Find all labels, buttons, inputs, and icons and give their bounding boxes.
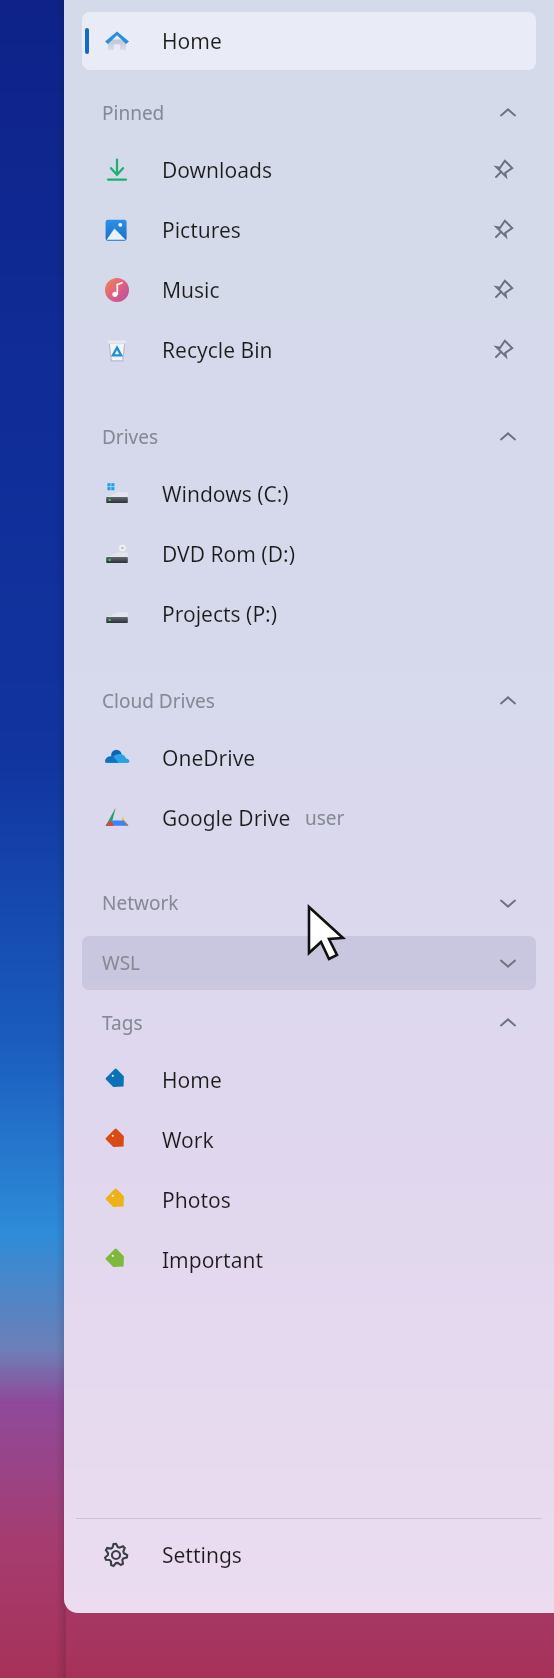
staticText: Google Drive [162, 804, 291, 833]
button[interactable]: Google Drive [64, 788, 554, 848]
button[interactable]: WSL [82, 936, 536, 990]
staticText: Pictures [162, 216, 241, 245]
button[interactable]: Settings [64, 1519, 554, 1591]
other: Unpin Music [490, 277, 516, 303]
button[interactable]: Tags [64, 996, 554, 1050]
staticText: Downloads [162, 156, 272, 185]
other: Unpin Recycle Bin [490, 337, 516, 363]
other: Unpin Downloads [490, 157, 516, 183]
staticText: Photos [162, 1186, 231, 1215]
button[interactable]: Projects (P:) [64, 584, 554, 644]
staticText: WSL [102, 950, 141, 976]
button[interactable]: OneDrive [64, 728, 554, 788]
staticText: OneDrive [162, 744, 256, 773]
staticText: user [305, 805, 345, 831]
button[interactable]: DVD Rom (D:) [64, 524, 554, 584]
button[interactable]: Home [64, 1050, 554, 1110]
staticText: Network [102, 890, 179, 916]
other: Unpin Pictures [490, 217, 516, 243]
button[interactable]: Pinned [64, 86, 554, 140]
staticText: Recycle Bin [162, 336, 273, 365]
button[interactable]: Home [82, 12, 536, 70]
staticText: Home [162, 27, 222, 56]
staticText: Work [162, 1126, 214, 1155]
button[interactable]: Pictures [64, 200, 554, 260]
staticText: Windows (C:) [162, 480, 289, 509]
button[interactable]: Photos [64, 1170, 554, 1230]
staticText: Pinned [102, 100, 165, 126]
button[interactable]: Network [64, 876, 554, 930]
button[interactable]: Cloud Drives [64, 674, 554, 728]
staticText: Important [162, 1246, 263, 1275]
staticText: Music [162, 276, 220, 305]
staticText: Tags [102, 1010, 143, 1036]
button[interactable]: Drives [64, 410, 554, 464]
staticText: Cloud Drives [102, 688, 215, 714]
staticText: Projects (P:) [162, 600, 278, 629]
button[interactable]: Work [64, 1110, 554, 1170]
staticText: Settings [162, 1541, 242, 1570]
button[interactable]: Music [64, 260, 554, 320]
button[interactable]: Recycle Bin [64, 320, 554, 380]
staticText: Home [162, 1066, 222, 1095]
button[interactable]: Downloads [64, 140, 554, 200]
button[interactable]: Important [64, 1230, 554, 1290]
staticText: DVD Rom (D:) [162, 540, 295, 569]
staticText: Drives [102, 424, 159, 450]
button[interactable]: Windows (C:) [64, 464, 554, 524]
